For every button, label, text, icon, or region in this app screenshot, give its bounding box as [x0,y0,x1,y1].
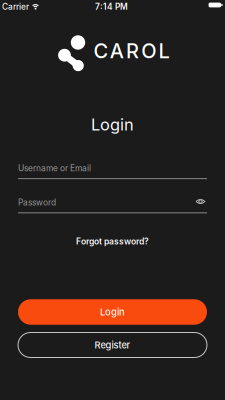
staticText: Carrier [2,2,29,11]
button[interactable]: Forgot password? [76,237,149,246]
staticText: 7:14 PM [95,2,128,11]
staticText: Register [94,340,130,350]
button[interactable]: Username or Email [18,163,207,179]
staticText: CAROL [93,39,170,62]
staticText: Forgot password? [76,237,149,246]
button[interactable]: Password [18,198,207,213]
button[interactable]: Register [18,332,207,357]
staticText: Password [18,198,56,207]
staticText: Login [91,115,134,134]
button[interactable]: Login [18,299,207,325]
staticText: Username or Email [18,163,91,173]
staticText: Login [100,307,125,317]
button[interactable]: Show password [195,196,205,206]
